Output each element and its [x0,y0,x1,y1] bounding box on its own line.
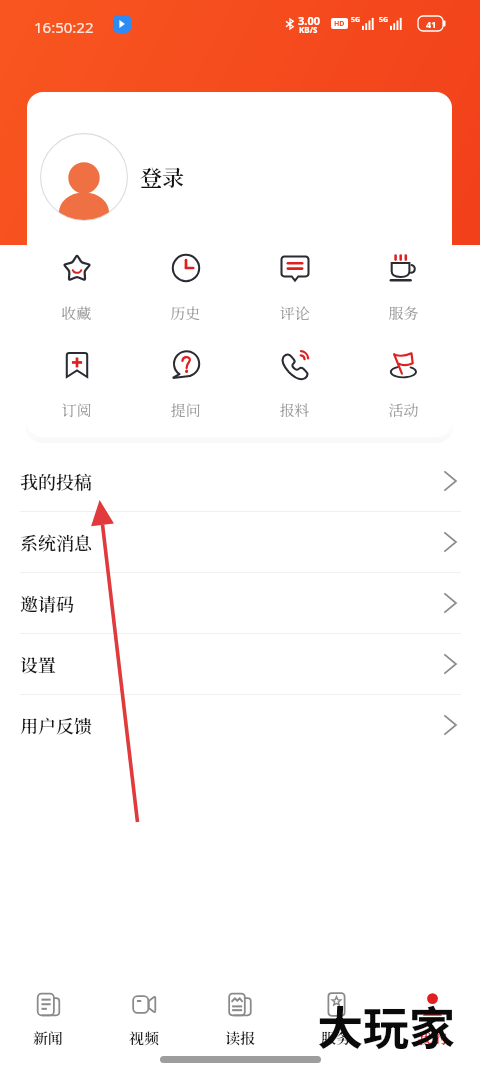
staticText: 3.00 [298,13,320,28]
button[interactable]: 提问 [131,350,240,421]
button[interactable]: 服务 [349,253,458,324]
staticText: 用户反馈 [20,712,92,738]
staticText: 服务 [388,302,419,324]
staticText: 评论 [279,302,310,324]
button[interactable]: 我的 [384,974,480,1054]
button[interactable]: 登录 [40,133,185,221]
button[interactable]: 历史 [131,253,240,324]
button[interactable]: 评论 [240,253,349,324]
staticText: 订阅 [61,399,92,421]
staticText: 邀请码 [20,590,74,616]
staticText: 登录 [140,161,185,193]
staticText: 服务 [321,1027,352,1049]
staticText: 我的投稿 [20,468,92,494]
button[interactable]: 用户反馈 [0,695,480,756]
button[interactable]: 订阅 [22,350,131,421]
staticText: 5G [379,15,389,25]
staticText: 视频 [129,1027,160,1049]
button[interactable]: 新闻 [0,974,96,1054]
button[interactable]: 系统消息 [0,512,480,573]
button[interactable]: 设置 [0,634,480,695]
button[interactable]: 邀请码 [0,573,480,634]
staticText: 大玩家 [317,992,455,1059]
staticText: 活动 [388,399,419,421]
staticText: 我的 [417,1027,448,1049]
staticText: 5G [351,15,361,25]
staticText: HD [334,19,345,29]
staticText: 41 [426,18,437,30]
staticText: 提问 [170,399,201,421]
staticText: 历史 [170,302,201,324]
button[interactable]: 视频 [96,974,192,1054]
button[interactable]: 报料 [240,350,349,421]
staticText: 系统消息 [20,529,92,555]
staticText: 收藏 [61,302,92,324]
button[interactable]: 收藏 [22,253,131,324]
button[interactable]: 我的投稿 [0,451,480,512]
button[interactable]: 读报 [192,974,288,1054]
button[interactable]: 活动 [349,350,458,421]
staticText: KB/S [299,24,318,35]
button[interactable]: 服务 [288,974,384,1054]
staticText: 新闻 [33,1027,64,1049]
staticText: 读报 [225,1027,256,1049]
staticText: 报料 [279,399,310,421]
staticText: 16:50:22 [34,17,94,37]
staticText: 设置 [20,651,56,677]
